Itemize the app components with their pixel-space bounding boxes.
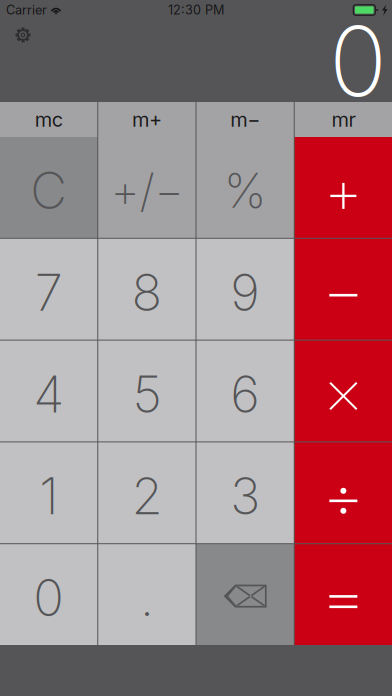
staticText: 5 bbox=[132, 363, 161, 425]
staticText: 9 bbox=[230, 261, 260, 323]
button[interactable]: Subtract bbox=[295, 239, 392, 340]
button[interactable]: m+ bbox=[98, 102, 195, 137]
staticText: 0 bbox=[33, 567, 64, 628]
staticText: 12:30 PM bbox=[168, 2, 224, 18]
staticText: 3 bbox=[230, 465, 260, 526]
button[interactable]: mc bbox=[0, 102, 97, 137]
button[interactable]: Equals bbox=[295, 544, 392, 645]
button[interactable]: 5 bbox=[98, 341, 195, 441]
staticText: m− bbox=[230, 107, 260, 132]
staticText: mr bbox=[331, 107, 355, 132]
staticText: 4 bbox=[33, 363, 64, 425]
staticText: 2 bbox=[131, 465, 162, 526]
button[interactable]: 1 bbox=[0, 442, 97, 543]
button[interactable]: 4 bbox=[0, 341, 97, 441]
staticText: Carrier bbox=[6, 2, 47, 18]
button[interactable]: mr bbox=[295, 102, 392, 137]
staticText: +/− bbox=[110, 163, 183, 218]
button[interactable]: Divide bbox=[295, 442, 392, 543]
button[interactable]: 0 bbox=[0, 544, 97, 645]
staticText: m+ bbox=[132, 107, 162, 132]
button[interactable]: m− bbox=[196, 102, 294, 137]
button[interactable]: 7 bbox=[0, 239, 97, 340]
staticText: 8 bbox=[131, 261, 162, 323]
button[interactable]: Multiply bbox=[295, 341, 392, 441]
staticText: C bbox=[30, 160, 67, 221]
button[interactable]: 8 bbox=[98, 239, 195, 340]
staticText: . bbox=[140, 567, 154, 628]
staticText: 0 bbox=[329, 3, 387, 119]
button[interactable]: C bbox=[0, 137, 97, 238]
button[interactable]: Add bbox=[295, 137, 392, 238]
button[interactable]: 3 bbox=[196, 442, 294, 543]
button[interactable]: 6 bbox=[196, 341, 294, 441]
button[interactable]: Settings bbox=[7, 20, 39, 50]
button[interactable]: . bbox=[98, 544, 195, 645]
staticText: 6 bbox=[230, 363, 260, 425]
button[interactable]: Delete bbox=[196, 544, 294, 645]
button[interactable]: % bbox=[196, 137, 294, 238]
staticText: mc bbox=[35, 107, 63, 132]
staticText: 1 bbox=[39, 465, 58, 526]
button[interactable]: 2 bbox=[98, 442, 195, 543]
button[interactable]: 9 bbox=[196, 239, 294, 340]
staticText: % bbox=[224, 161, 267, 219]
button[interactable]: +/− bbox=[98, 137, 195, 238]
staticText: 7 bbox=[35, 261, 63, 323]
